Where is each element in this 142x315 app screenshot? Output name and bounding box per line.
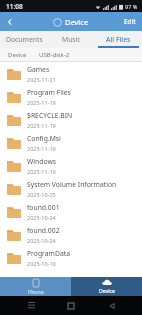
staticText: 2025-10-10 bbox=[27, 260, 56, 267]
button[interactable]: Back bbox=[102, 296, 122, 315]
staticText: Music bbox=[62, 35, 81, 44]
staticText: 2025-11-21 bbox=[27, 76, 56, 83]
staticText: found.002 bbox=[27, 226, 60, 235]
button[interactable]: Documents bbox=[0, 31, 48, 48]
button[interactable]: Device bbox=[7, 51, 28, 59]
button[interactable]: $RECYCLE.BIN bbox=[0, 108, 142, 131]
staticText: 97 % bbox=[125, 3, 138, 10]
button[interactable]: found.001 bbox=[0, 200, 142, 223]
button[interactable]: System Volume Information bbox=[0, 177, 142, 200]
button[interactable]: Phone bbox=[0, 277, 71, 296]
staticText: 2025-11-19 bbox=[27, 145, 56, 152]
staticText: 2025-11-19 bbox=[27, 122, 56, 129]
staticText: Edit bbox=[124, 17, 136, 26]
button[interactable]: found.002 bbox=[0, 223, 142, 246]
button[interactable]: All Files bbox=[95, 31, 142, 48]
staticText: 11:08 bbox=[6, 2, 23, 11]
staticText: 2025-10-24 bbox=[27, 214, 56, 221]
staticText: All Files bbox=[106, 35, 131, 44]
staticText: Program Files bbox=[27, 88, 71, 97]
button[interactable]: Config.Msi bbox=[0, 131, 142, 154]
staticText: Documents bbox=[6, 35, 43, 44]
button[interactable]: Home bbox=[61, 296, 81, 315]
staticText: Phone bbox=[28, 288, 44, 295]
button[interactable]: Games bbox=[0, 62, 142, 85]
staticText: 2025-10-24 bbox=[27, 237, 56, 244]
staticText: Device bbox=[65, 17, 89, 27]
staticText: System Volume Information bbox=[27, 180, 117, 189]
button[interactable]: Back bbox=[0, 12, 20, 31]
button[interactable]: Edit bbox=[118, 12, 142, 31]
button[interactable]: USB-disk-2 bbox=[38, 51, 71, 59]
button[interactable]: ProgramData bbox=[0, 246, 142, 269]
staticText: Device bbox=[99, 287, 115, 294]
staticText: found.001 bbox=[27, 203, 60, 212]
staticText: Device bbox=[8, 51, 27, 59]
button[interactable]: Program Files bbox=[0, 85, 142, 108]
staticText: USB-disk-2 bbox=[39, 51, 70, 59]
staticText: Windows bbox=[27, 157, 57, 166]
button[interactable]: Music bbox=[48, 31, 95, 48]
staticText: 2025-11-19 bbox=[27, 99, 56, 106]
staticText: 2025-11-19 bbox=[27, 168, 56, 175]
staticText: $RECYCLE.BIN bbox=[27, 111, 73, 120]
staticText: Games bbox=[27, 65, 50, 74]
staticText: 2025-10-25 bbox=[27, 191, 56, 198]
button[interactable]: Windows bbox=[0, 154, 142, 177]
button[interactable]: Recents bbox=[21, 296, 41, 315]
staticText: ProgramData bbox=[27, 249, 70, 258]
staticText: Config.Msi bbox=[27, 134, 61, 143]
button[interactable]: Device bbox=[71, 277, 142, 296]
